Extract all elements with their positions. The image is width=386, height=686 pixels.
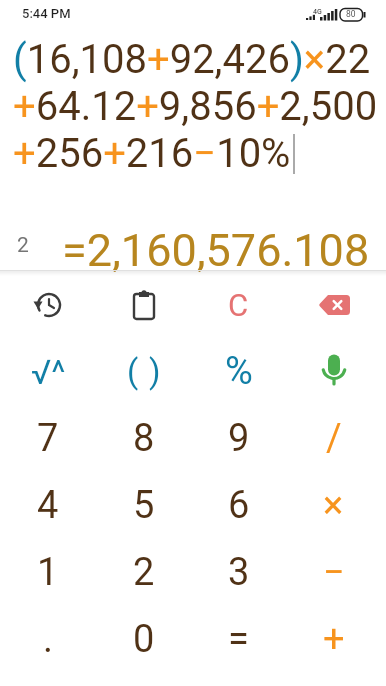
staticText: / — [326, 416, 342, 461]
staticText: − — [323, 550, 345, 595]
staticText: C — [228, 287, 249, 323]
staticText: ) — [149, 352, 161, 391]
staticText: 5 — [133, 483, 155, 528]
staticText: 6 — [228, 483, 250, 528]
button[interactable]: C — [191, 271, 286, 338]
staticText: 0 — [133, 617, 155, 662]
staticText: × — [323, 483, 344, 528]
button[interactable]: 6 — [191, 472, 286, 539]
staticText: +64.12+9,856+2,500 — [13, 83, 378, 130]
staticText: 4G — [313, 8, 322, 16]
button[interactable]: . — [0, 606, 96, 673]
button[interactable]: 5 — [96, 472, 191, 539]
button[interactable]: 2 — [96, 539, 191, 606]
staticText: 5:44 PM — [22, 6, 71, 21]
staticText: =2,160,576.108 — [62, 224, 370, 272]
staticText: 9 — [228, 416, 250, 461]
staticText: 3 — [228, 550, 250, 595]
staticText: +256+216−10% — [13, 130, 291, 177]
staticText: = — [228, 617, 249, 662]
staticText: √^ — [31, 352, 66, 392]
button[interactable]: 4 — [0, 472, 96, 539]
button[interactable]: % — [191, 338, 286, 405]
staticText: % — [225, 349, 253, 394]
button[interactable] — [286, 338, 381, 405]
button[interactable]: 8 — [96, 405, 191, 472]
button[interactable]: × — [286, 472, 381, 539]
staticText: 1 — [37, 550, 59, 595]
button[interactable]: √^ — [0, 338, 96, 405]
button[interactable] — [96, 271, 191, 338]
button[interactable]: 0 — [96, 606, 191, 673]
button[interactable]: 3 — [191, 539, 286, 606]
button[interactable]: 1 — [0, 539, 96, 606]
staticText: 8 — [133, 416, 155, 461]
button[interactable]: = — [191, 606, 286, 673]
button[interactable]: 9 — [191, 405, 286, 472]
staticText: 80 — [346, 9, 356, 19]
staticText: ( — [127, 352, 139, 391]
staticText: 2 — [17, 233, 29, 258]
staticText: + — [323, 617, 345, 662]
button[interactable]: 7 — [0, 405, 96, 472]
staticText: 2 — [133, 550, 155, 595]
staticText: . — [43, 617, 54, 662]
button[interactable]: + — [286, 606, 381, 673]
staticText: 4 — [37, 483, 59, 528]
staticText: 7 — [37, 416, 59, 461]
button[interactable]: / — [286, 405, 381, 472]
button[interactable]: − — [286, 539, 381, 606]
button[interactable] — [286, 271, 381, 338]
button[interactable] — [0, 271, 96, 338]
staticText: (16,108+92,426)×22 — [13, 36, 371, 83]
button[interactable]: ( — [96, 338, 191, 405]
